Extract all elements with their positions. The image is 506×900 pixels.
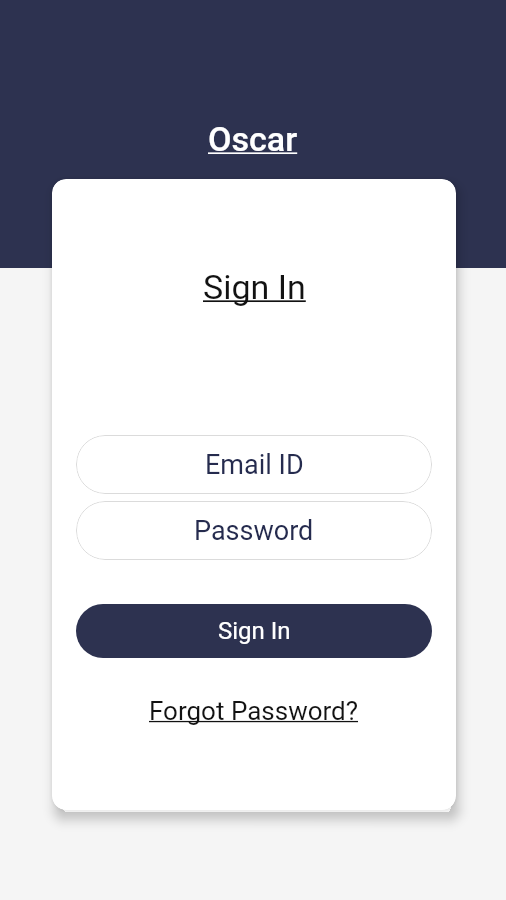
staticText: Sign In (218, 617, 291, 645)
staticText: Sign In (203, 267, 306, 307)
staticText: Oscar (208, 119, 298, 159)
button[interactable]: Forgot Password? (149, 696, 359, 726)
button[interactable]: Password (76, 501, 432, 560)
staticText: Email ID (205, 449, 304, 481)
button[interactable]: Sign In (76, 604, 432, 658)
staticText: Password (194, 515, 314, 547)
button[interactable]: Email ID (76, 435, 432, 494)
